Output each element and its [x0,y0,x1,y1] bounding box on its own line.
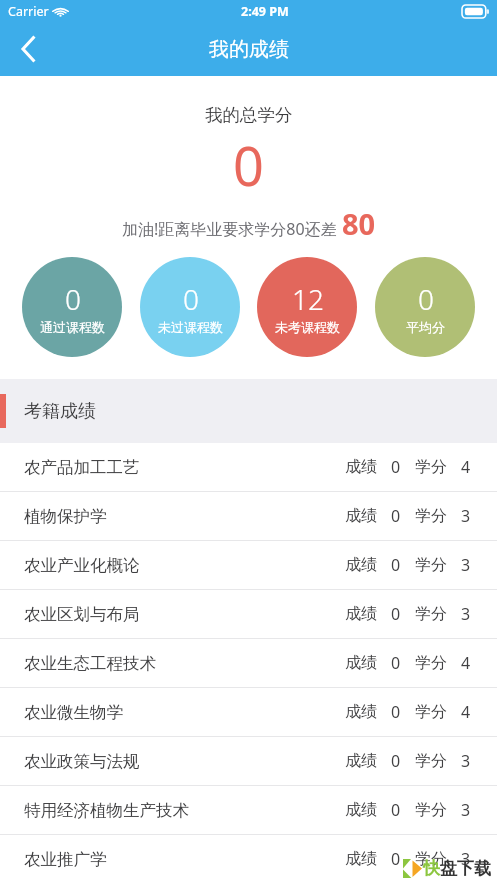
staticText: 0 [391,848,401,870]
staticText: 考籍成绩 [24,400,96,423]
button[interactable]: 农业生态工程技术 [0,639,497,687]
staticText: 4 [461,701,471,723]
staticText: 0 [65,280,81,318]
staticText: 通过课程数 [40,319,105,335]
staticText: 0 [391,456,401,478]
staticText: Carrier [8,3,49,20]
staticText: 学分 [415,555,447,575]
staticText: 12 [292,280,324,318]
staticText: 农业区划与布局 [24,604,140,625]
staticText: 成绩 [345,751,377,771]
staticText: 成绩 [345,800,377,820]
staticText: 特用经济植物生产技术 [24,800,189,821]
staticText: 0 [391,652,401,674]
button[interactable]: 农业区划与布局 [0,590,497,638]
button[interactable]: 农业政策与法规 [0,737,497,785]
staticText: 0 [391,799,401,821]
staticText: 0 [391,750,401,772]
staticText: 0 [391,554,401,576]
staticText: 农业政策与法规 [24,751,140,772]
button[interactable]: 0 [22,257,122,357]
button[interactable]: 0 [375,257,475,357]
button[interactable]: 农产品加工工艺 [0,443,497,491]
staticText: 3 [461,750,471,772]
staticText: 农产品加工工艺 [24,457,140,478]
staticText: 4 [461,652,471,674]
staticText: 学分 [415,751,447,771]
staticText: 未过课程数 [158,319,223,335]
staticText: 加油!距离毕业要求学分80还差 [122,218,337,240]
staticText: 学分 [415,457,447,477]
staticText: 快 [423,858,440,879]
staticText: 我的总学分 [205,104,293,126]
staticText: 农业生态工程技术 [24,653,156,674]
staticText: 农业微生物学 [24,702,123,723]
staticText: 4 [461,456,471,478]
staticText: 平均分 [406,319,445,335]
staticText: 学分 [415,800,447,820]
staticText: 学分 [415,604,447,624]
staticText: 成绩 [345,849,377,869]
button[interactable]: 12 [257,257,357,357]
button[interactable]: 0 [140,257,240,357]
staticText: 3 [461,799,471,821]
staticText: 3 [461,603,471,625]
staticText: 我的成绩 [209,37,289,62]
button[interactable]: 特用经济植物生产技术 [0,786,497,834]
staticText: 成绩 [345,555,377,575]
button[interactable]: 农业微生物学 [0,688,497,736]
staticText: 学分 [415,506,447,526]
staticText: 成绩 [345,702,377,722]
staticText: 0 [391,603,401,625]
staticText: 2:49 PM [241,3,289,20]
staticText: 未考课程数 [275,319,340,335]
staticText: 成绩 [345,457,377,477]
button[interactable]: 植物保护学 [0,492,497,540]
button[interactable]: 农业推广学 [0,835,497,883]
button[interactable]: Back [0,22,56,76]
button[interactable]: 农业产业化概论 [0,541,497,589]
staticText: 0 [391,701,401,723]
staticText: 学分 [415,849,447,869]
staticText: 学分 [415,653,447,673]
staticText: 农业产业化概论 [24,555,140,576]
staticText: 成绩 [345,653,377,673]
staticText: 植物保护学 [24,506,107,527]
staticText: 学分 [415,702,447,722]
staticText: 0 [418,280,434,318]
staticText: 农业推广学 [24,849,107,870]
staticText: 3 [461,505,471,527]
staticText: 3 [461,848,471,870]
staticText: 3 [461,554,471,576]
staticText: 成绩 [345,604,377,624]
staticText: 成绩 [345,506,377,526]
staticText: 0 [183,280,199,318]
staticText: 0 [391,505,401,527]
staticText: 盘下载 [440,858,491,879]
staticText: 80 [342,204,376,243]
staticText: 0 [233,128,264,202]
